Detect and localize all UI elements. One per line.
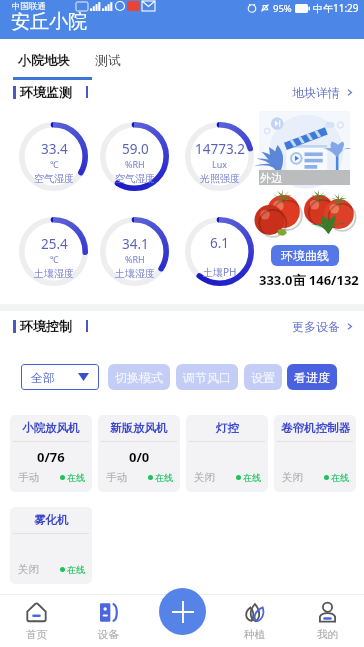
button[interactable]: 全部 xyxy=(21,364,99,390)
staticText: 25.4 xyxy=(41,235,68,253)
staticText: 环境曲线 xyxy=(281,248,329,263)
staticText: 小院地块 xyxy=(18,52,70,68)
staticText: 在线 xyxy=(331,472,349,483)
staticText: 0/76 xyxy=(37,448,65,466)
staticText: 土壤PH xyxy=(203,265,237,279)
button[interactable]: Add xyxy=(159,588,206,635)
staticText: 手动 xyxy=(106,471,127,484)
staticText: 关闭 xyxy=(194,471,215,484)
staticText: 95% xyxy=(273,2,292,15)
button[interactable]: 调节风口 xyxy=(176,364,238,390)
button[interactable]: 雾化机 xyxy=(10,507,92,584)
button[interactable]: 小院放风机 xyxy=(10,415,92,492)
button[interactable]: 设备 xyxy=(72,595,145,647)
staticText: 59.0 xyxy=(122,140,149,158)
staticText: 土壤湿度 xyxy=(34,267,74,280)
staticText: 切换模式 xyxy=(115,370,163,385)
staticText: 6.1 xyxy=(210,234,230,252)
button[interactable]: 地块详情 xyxy=(292,85,354,100)
staticText: 中国联通 xyxy=(12,1,46,12)
button[interactable]: 新版放风机 xyxy=(98,415,180,492)
button[interactable]: 种植 xyxy=(218,595,291,647)
button[interactable]: 环境曲线 xyxy=(271,245,339,266)
staticText: ℃ xyxy=(50,158,59,170)
button[interactable]: 小院地块 xyxy=(18,52,70,68)
staticText: 种植 xyxy=(244,628,265,641)
staticText: 全部 xyxy=(31,370,55,385)
button[interactable]: 我的 xyxy=(291,595,364,647)
staticText: 我的 xyxy=(317,628,338,641)
staticText: 33.4 xyxy=(41,140,68,158)
button[interactable]: 设置 xyxy=(244,364,282,390)
staticText: 小院放风机 xyxy=(22,421,80,435)
staticText: 空气湿度 xyxy=(34,172,74,185)
staticText: 中午11:29 xyxy=(313,1,359,15)
staticText: 在线 xyxy=(243,472,261,483)
staticText: 关闭 xyxy=(18,563,39,576)
staticText: 环境监测 xyxy=(20,84,72,100)
staticText: 新版放风机 xyxy=(110,421,168,435)
staticText: 333.0亩 146/132 xyxy=(259,271,350,289)
staticText: 34.1 xyxy=(122,235,149,253)
button[interactable]: 测试 xyxy=(95,52,121,68)
staticText: 调节风口 xyxy=(183,370,231,385)
staticText: %RH xyxy=(125,253,145,265)
button[interactable]: 更多设备 xyxy=(292,319,354,334)
staticText: 环境控制 xyxy=(20,318,72,334)
staticText: 卷帘机控制器 xyxy=(281,421,350,435)
staticText: 土壤湿度 xyxy=(115,267,155,280)
staticText: 首页 xyxy=(26,628,47,641)
button[interactable]: 看进度 xyxy=(287,364,337,390)
staticText: 外边 xyxy=(260,171,282,185)
staticText: 测试 xyxy=(95,52,121,68)
staticText: 空气湿度 xyxy=(115,172,155,185)
staticText: Lux xyxy=(212,158,228,170)
button[interactable]: 外边 xyxy=(259,111,350,185)
staticText: 更多设备 xyxy=(292,319,340,334)
staticText: 安丘小院 xyxy=(11,10,87,34)
staticText: 地块详情 xyxy=(292,85,340,100)
button[interactable]: 切换模式 xyxy=(108,364,170,390)
button[interactable]: 卷帘机控制器 xyxy=(274,415,356,492)
staticText: 关闭 xyxy=(282,471,303,484)
staticText: 在线 xyxy=(67,564,85,575)
button[interactable]: 首页 xyxy=(0,595,72,647)
staticText: 灯控 xyxy=(216,421,239,435)
button[interactable]: 灯控 xyxy=(186,415,268,492)
staticText: 看进度 xyxy=(294,370,330,385)
staticText: %RH xyxy=(125,158,145,170)
staticText: 设置 xyxy=(251,370,275,385)
staticText: 在线 xyxy=(67,472,85,483)
staticText: 设备 xyxy=(98,628,119,641)
staticText: 光照强度 xyxy=(200,172,240,185)
staticText: ℃ xyxy=(50,253,59,265)
staticText: 在线 xyxy=(155,472,173,483)
staticText: 手动 xyxy=(18,471,39,484)
staticText: 雾化机 xyxy=(34,513,69,527)
staticText: 0/0 xyxy=(129,448,150,466)
staticText: 14773.2 xyxy=(195,140,245,158)
